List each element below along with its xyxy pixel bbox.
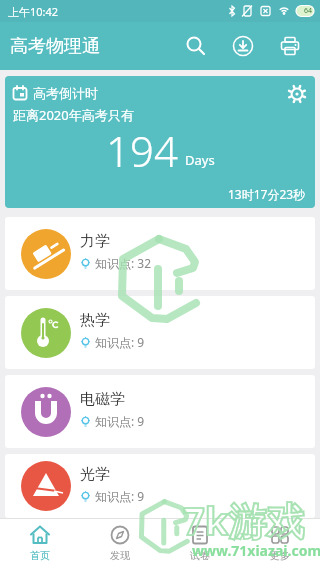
staticText: 知识点: 9 [95, 488, 145, 504]
staticText: 高考物理通 [10, 35, 100, 58]
button[interactable] [172, 22, 219, 70]
button[interactable] [266, 22, 313, 70]
staticText: 光学 [80, 465, 110, 484]
staticText: 知识点: 9 [95, 413, 145, 429]
staticText: 电磁学 [80, 390, 125, 409]
staticText: 距离2020年高考只有 [13, 106, 134, 124]
staticText: 上午10:42 [8, 4, 59, 19]
button[interactable]: 光学 [5, 454, 315, 518]
staticText: 知识点: 32 [95, 255, 152, 271]
staticText: 发现 [110, 549, 130, 562]
staticText: 高考倒计时 [33, 85, 98, 101]
staticText: 热学 [80, 311, 110, 330]
staticText: 更多 [270, 549, 290, 562]
button[interactable]: 更多 [240, 519, 320, 568]
staticText: 力学 [80, 232, 110, 251]
staticText: 64 [304, 6, 313, 16]
button[interactable] [219, 22, 266, 70]
button[interactable]: 试卷 [160, 519, 240, 568]
button[interactable]: 热学 [5, 296, 315, 369]
staticText: 7k游戏 [183, 494, 305, 546]
staticText: 试卷 [190, 549, 210, 562]
button[interactable]: 高考倒计时 [5, 76, 315, 208]
staticText: www.71xiazai.com [192, 541, 320, 560]
button[interactable]: 发现 [80, 519, 160, 568]
button[interactable] [283, 80, 311, 108]
staticText: 13时17分23秒 [228, 186, 306, 202]
staticText: 知识点: 9 [95, 334, 145, 350]
button[interactable]: 电磁学 [5, 375, 315, 448]
staticText: 首页 [30, 549, 50, 562]
button[interactable]: 力学 [5, 217, 315, 290]
staticText: 194 [106, 122, 178, 179]
staticText: Days [185, 151, 215, 169]
button[interactable]: 首页 [0, 519, 80, 568]
